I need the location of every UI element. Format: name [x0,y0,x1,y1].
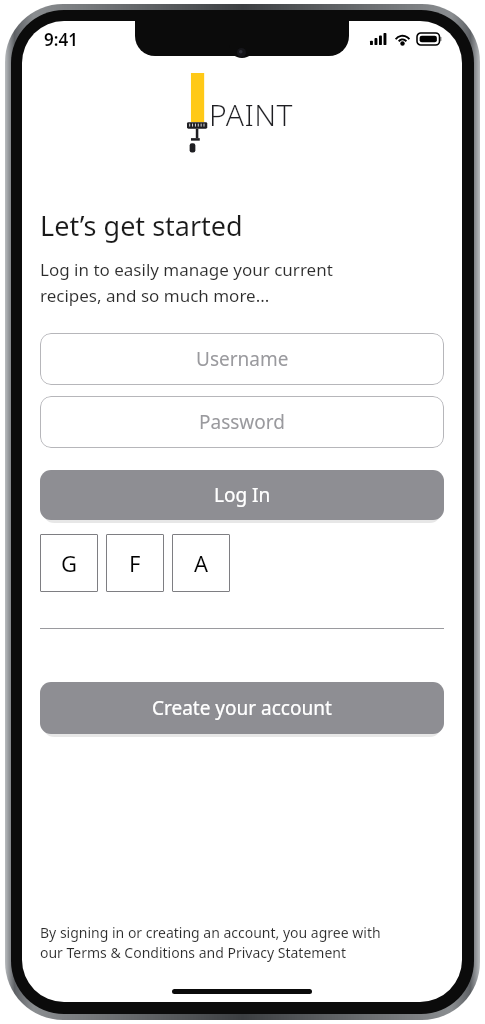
staticText: Password [199,409,285,435]
button[interactable]: Sign in with Facebook [106,534,164,592]
staticText: 9:41 [44,28,78,51]
staticText: A [194,548,209,578]
staticText: G [61,548,78,578]
button[interactable]: Create your account [40,682,444,734]
button[interactable]: Username [40,333,444,385]
staticText: By signing in or creating an account, yo… [40,923,381,963]
staticText: Create your account [152,695,332,721]
staticText: Log in to easily manage your current rec… [40,258,333,307]
staticText: Log In [214,482,271,508]
button[interactable]: Sign in with Apple [172,534,230,592]
button[interactable]: Password [40,396,444,448]
button[interactable]: Sign in with Google [40,534,98,592]
other: Paint roller logo [187,73,209,151]
staticText: F [129,548,141,578]
button[interactable]: Log In [40,470,444,520]
staticText: Username [196,346,289,372]
staticText: PAINT [209,94,294,135]
staticText: Let’s get started [40,207,243,244]
